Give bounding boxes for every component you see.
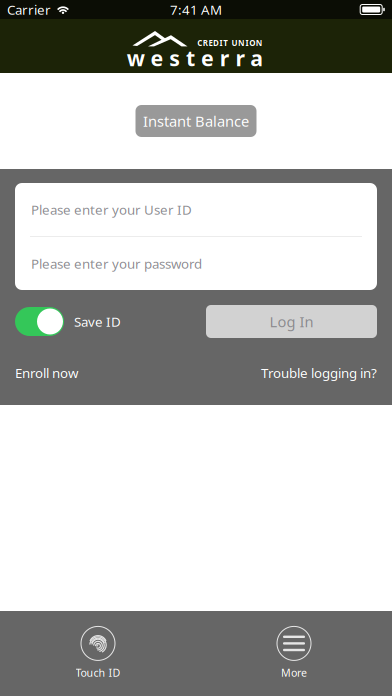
staticText: Log In xyxy=(269,312,313,331)
staticText: westerra xyxy=(127,44,263,72)
button[interactable]: Please enter your User ID xyxy=(15,183,377,236)
button[interactable]: Instant Balance xyxy=(135,105,256,137)
button[interactable]: More xyxy=(196,626,392,680)
staticText: Save ID xyxy=(74,313,121,330)
staticText: Touch ID xyxy=(75,665,120,680)
staticText: Carrier xyxy=(7,1,51,18)
staticText: 7:41 AM xyxy=(170,1,222,18)
staticText: More xyxy=(281,665,307,680)
button[interactable]: Save ID xyxy=(15,307,121,336)
button[interactable]: Please enter your password xyxy=(15,237,377,290)
staticText: Please enter your password xyxy=(31,255,202,272)
staticText: Enroll now xyxy=(15,364,78,382)
staticText: CREDIT UNION xyxy=(197,38,263,48)
staticText: Instant Balance xyxy=(143,111,249,131)
staticText: Trouble logging in? xyxy=(261,364,377,382)
button[interactable]: Touch ID xyxy=(0,626,196,680)
staticText: Please enter your User ID xyxy=(31,201,192,218)
button[interactable]: Enroll now xyxy=(15,364,78,382)
button[interactable]: Trouble logging in? xyxy=(261,364,377,382)
button[interactable]: Log In xyxy=(206,305,377,338)
